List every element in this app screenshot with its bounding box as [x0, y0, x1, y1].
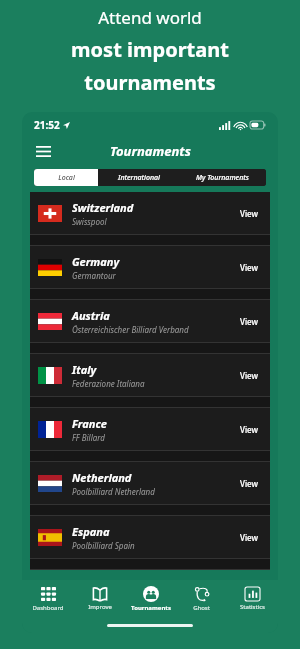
- staticText: Espana: [72, 524, 110, 539]
- staticText: Poolbilliard Spain: [72, 540, 135, 551]
- staticText: France: [72, 416, 107, 431]
- staticText: Improve: [88, 603, 112, 611]
- staticText: View: [240, 478, 258, 489]
- staticText: View: [240, 208, 258, 219]
- staticText: My Tournaments: [196, 173, 249, 183]
- button[interactable]: View: [236, 529, 262, 546]
- button[interactable]: My Tournaments: [179, 169, 266, 186]
- button[interactable]: International: [98, 169, 179, 186]
- staticText: Germantour: [72, 270, 116, 281]
- staticText: Dashboard: [32, 604, 64, 612]
- button[interactable]: Local: [34, 169, 98, 186]
- button[interactable]: Austria: [30, 300, 270, 342]
- button[interactable]: Statistics: [227, 580, 278, 618]
- button[interactable]: View: [236, 313, 262, 330]
- button[interactable]: View: [236, 367, 262, 384]
- button[interactable]: View: [236, 421, 262, 438]
- staticText: View: [240, 370, 258, 381]
- button[interactable]: View: [236, 205, 262, 222]
- staticText: Swisspool: [72, 216, 107, 227]
- button[interactable]: France: [30, 408, 270, 450]
- staticText: Statistics: [240, 603, 265, 611]
- button[interactable]: Menu: [32, 140, 54, 162]
- button[interactable]: Netherland: [30, 462, 270, 504]
- staticText: View: [240, 532, 258, 543]
- staticText: View: [240, 424, 258, 435]
- staticText: Poolbilliard Netherland: [72, 486, 155, 497]
- staticText: Switzerland: [72, 200, 134, 215]
- staticText: Local: [58, 173, 75, 183]
- staticText: Italy: [72, 362, 97, 377]
- button[interactable]: Espana: [30, 516, 270, 558]
- staticText: Netherland: [72, 470, 132, 485]
- staticText: Tournaments: [110, 142, 191, 160]
- button[interactable]: Dashboard: [22, 580, 74, 618]
- staticText: Attend world: [98, 6, 202, 29]
- staticText: View: [240, 316, 258, 327]
- staticText: Germany: [72, 254, 120, 269]
- staticText: tournaments: [84, 69, 216, 96]
- staticText: FF Billard: [72, 432, 105, 443]
- button[interactable]: View: [236, 475, 262, 492]
- staticText: View: [240, 262, 258, 273]
- button[interactable]: Germany: [30, 246, 270, 288]
- staticText: Österreichischer Billiard Verband: [72, 324, 189, 335]
- button[interactable]: Improve: [74, 580, 125, 618]
- staticText: Tournaments: [131, 604, 171, 612]
- button[interactable]: Tournaments: [125, 580, 176, 618]
- button[interactable]: Italy: [30, 354, 270, 396]
- staticText: International: [118, 173, 160, 183]
- button[interactable]: View: [236, 259, 262, 276]
- button[interactable]: Ghost: [176, 580, 227, 618]
- staticText: Federazione Italiana: [72, 378, 145, 389]
- staticText: Ghost: [193, 604, 210, 612]
- staticText: most important: [71, 36, 229, 63]
- staticText: Austria: [72, 308, 110, 323]
- button[interactable]: Switzerland: [30, 192, 270, 234]
- staticText: 21:52: [34, 118, 60, 132]
